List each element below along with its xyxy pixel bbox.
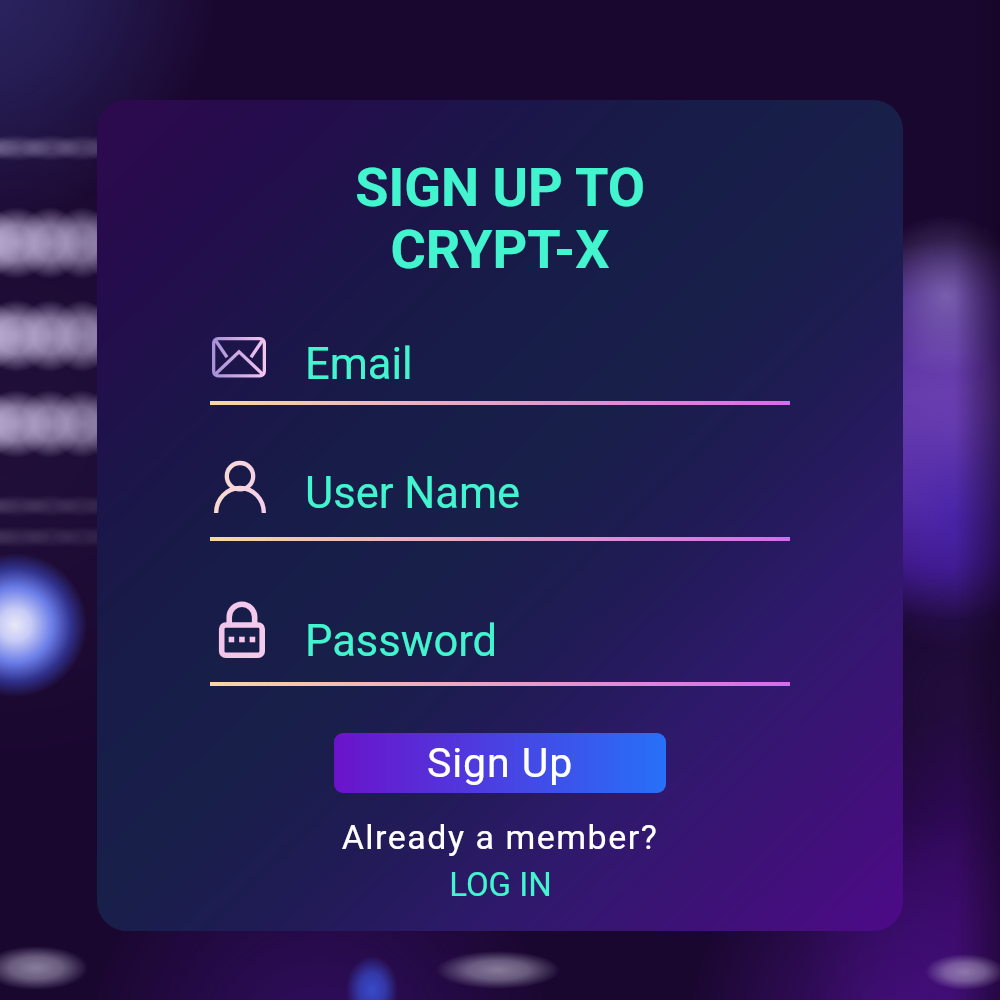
staticText: Password	[305, 616, 498, 667]
staticText: SIGN UP TO CRYPT-X	[97, 156, 903, 281]
button[interactable]: Email field	[210, 321, 790, 408]
staticText: Sign Up	[427, 739, 574, 787]
button[interactable]: Password field	[210, 602, 790, 689]
button[interactable]: Sign Up	[334, 733, 666, 793]
staticText: Email	[305, 339, 413, 390]
staticText: Already a member?	[97, 817, 903, 857]
button[interactable]: LOG IN	[437, 860, 564, 909]
staticText: User Name	[305, 468, 521, 519]
button[interactable]: User Name field	[210, 457, 790, 544]
